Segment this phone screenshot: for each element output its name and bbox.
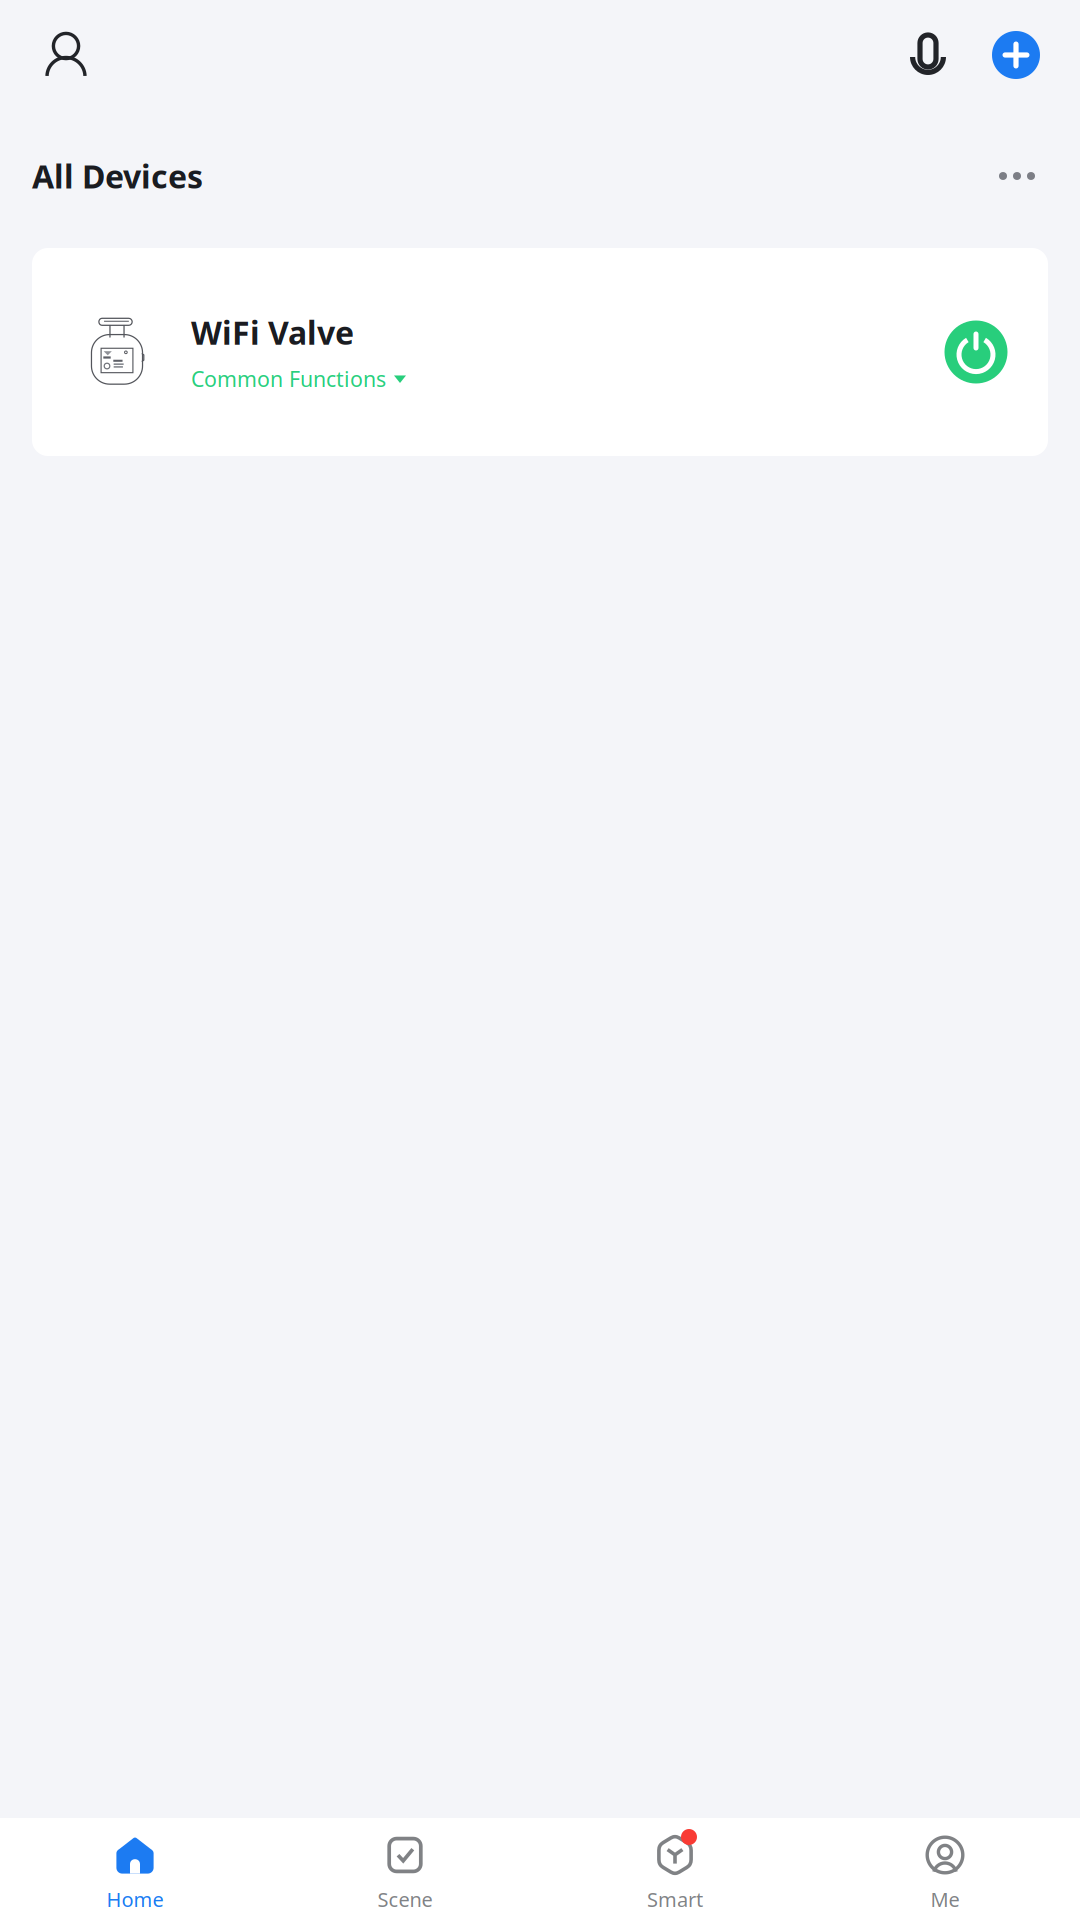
- button[interactable]: Scene: [270, 1818, 540, 1920]
- button[interactable]: WiFi Valve: [32, 248, 1048, 456]
- staticText: Home: [106, 1886, 163, 1913]
- staticText: Scene: [377, 1886, 432, 1913]
- staticText: Common Functions: [191, 365, 386, 393]
- staticText: Smart: [647, 1886, 703, 1913]
- button[interactable]: Add device: [988, 27, 1044, 83]
- button[interactable]: Profile: [38, 27, 94, 83]
- button[interactable]: Voice control: [900, 27, 956, 83]
- button[interactable]: Home: [0, 1818, 270, 1920]
- button[interactable]: Smart: [540, 1818, 810, 1920]
- staticText: WiFi Valve: [191, 311, 354, 354]
- button[interactable]: More options: [983, 150, 1051, 202]
- button[interactable]: Me: [810, 1818, 1080, 1920]
- staticText: Me: [930, 1886, 959, 1913]
- staticText: All Devices: [32, 155, 203, 197]
- button[interactable]: Power: [940, 316, 1012, 388]
- button[interactable]: Common Functions: [191, 365, 406, 393]
